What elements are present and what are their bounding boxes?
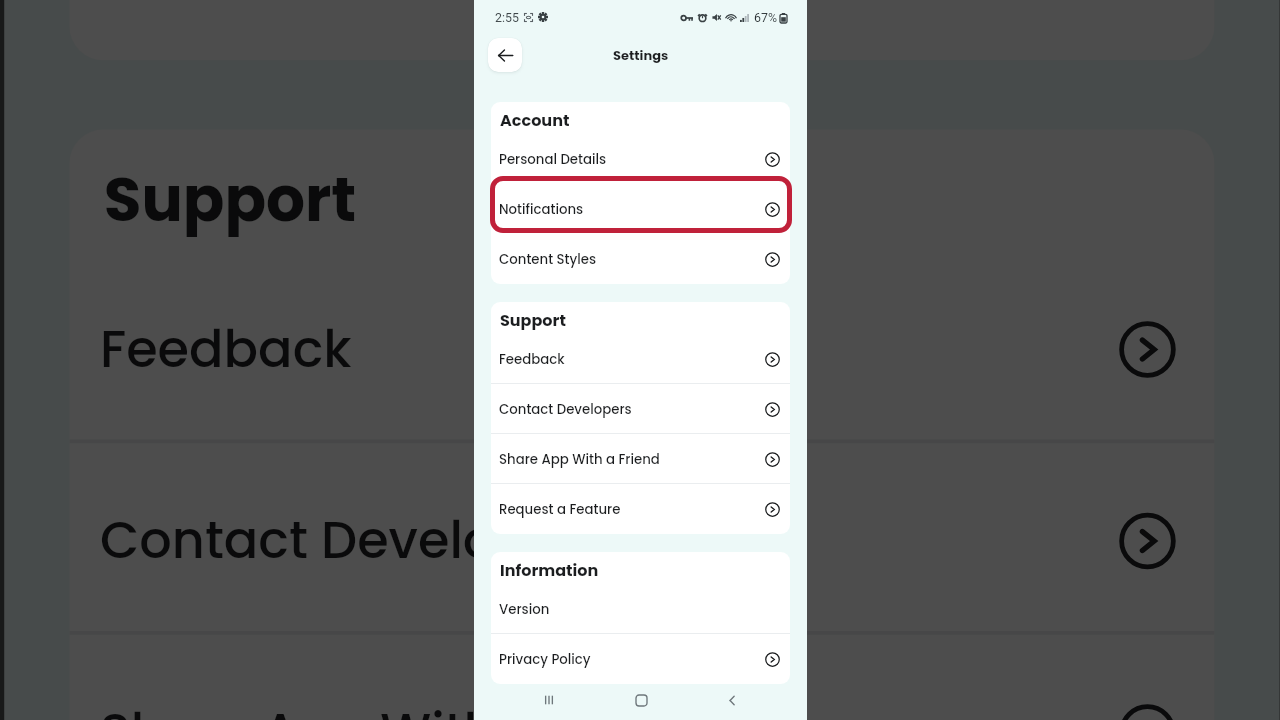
staticText: Version bbox=[499, 600, 550, 619]
staticText: Content Styles bbox=[100, 0, 475, 3]
button[interactable]: Privacy Policy bbox=[491, 634, 790, 684]
staticText: Support bbox=[500, 309, 566, 331]
button[interactable]: Content Styles bbox=[491, 234, 790, 284]
staticText: Share App With a Friend bbox=[100, 696, 717, 720]
button[interactable]: Request a Feature bbox=[491, 484, 790, 534]
button[interactable]: Version bbox=[491, 584, 790, 634]
staticText: Information bbox=[500, 559, 599, 581]
button[interactable]: Contact Developers bbox=[69, 443, 1214, 635]
staticText: Feedback bbox=[499, 350, 565, 369]
button[interactable]: Back bbox=[716, 684, 748, 716]
button[interactable]: Contact Developers bbox=[491, 384, 790, 434]
button[interactable]: Content Styles bbox=[69, 0, 1214, 60]
staticText: Contact Developers bbox=[499, 400, 632, 419]
button[interactable]: Home bbox=[625, 684, 657, 716]
staticText: 67% bbox=[754, 10, 778, 25]
button[interactable]: Recents bbox=[533, 684, 565, 716]
button[interactable]: Back bbox=[488, 38, 522, 72]
staticText: Settings bbox=[613, 46, 669, 64]
staticText: Notifications bbox=[499, 200, 584, 219]
staticText: Account bbox=[500, 109, 570, 131]
staticText: Support bbox=[104, 156, 357, 240]
staticText: Contact Developers bbox=[100, 505, 609, 577]
staticText: Personal Details bbox=[499, 150, 607, 169]
staticText: Content Styles bbox=[499, 250, 597, 269]
button[interactable]: Notifications bbox=[491, 184, 790, 234]
button[interactable]: Personal Details bbox=[491, 134, 790, 184]
staticText: Share App With a Friend bbox=[499, 450, 660, 469]
staticText: Feedback bbox=[100, 313, 353, 386]
button[interactable]: Feedback bbox=[69, 252, 1214, 443]
button[interactable]: Feedback bbox=[491, 334, 790, 384]
staticText: Privacy Policy bbox=[499, 650, 591, 669]
button[interactable]: Share App With a Friend bbox=[491, 434, 790, 484]
staticText: 2:55 bbox=[495, 10, 519, 25]
staticText: Request a Feature bbox=[499, 500, 621, 519]
button[interactable]: Share App With a Friend bbox=[69, 635, 1214, 720]
